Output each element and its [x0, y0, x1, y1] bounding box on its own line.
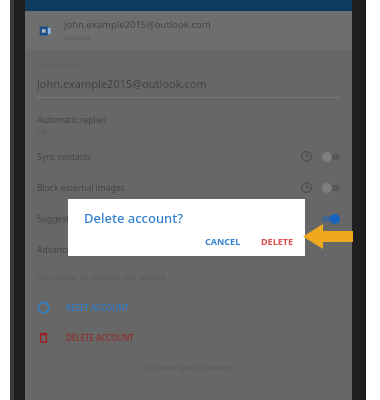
staticText: Automatic replies: [37, 114, 107, 126]
staticText: Suggested replies: [37, 213, 109, 225]
staticText: DELETE: [261, 235, 293, 247]
staticText: DELETE ACCOUNT: [66, 332, 134, 343]
button[interactable]: Sync contacts: [25, 141, 352, 172]
button[interactable]: Block external images: [25, 172, 352, 203]
staticText: Advanced settings: [37, 244, 111, 256]
staticText: Sync issues? Try resetting your account: [37, 273, 165, 283]
staticText: john.example2015@outlook.com: [64, 18, 211, 31]
button[interactable]: DELETE ACCOUNT: [25, 325, 352, 349]
staticText: Sync contacts: [37, 151, 92, 163]
button[interactable]: Toggle Suggested replies: [322, 213, 340, 225]
button[interactable]: CANCEL: [197, 231, 249, 251]
other: Pointer arrow highlighting Delete: [303, 224, 353, 249]
staticText: john.example2015@outlook.com: [37, 76, 207, 91]
staticText: Delete account?: [84, 209, 183, 227]
button[interactable]: RESET ACCOUNT: [25, 295, 352, 319]
staticText: Microsoft sync technology: [146, 363, 232, 373]
button[interactable]: Toggle Sync contacts: [322, 151, 340, 163]
other: Schedule: [301, 182, 312, 193]
button[interactable]: Automatic replies: [25, 110, 352, 141]
staticText: Outlook: [64, 33, 91, 43]
button[interactable]: john.example2015@outlook.com: [25, 11, 352, 49]
button[interactable]: Suggested replies: [25, 203, 352, 234]
button[interactable]: Advanced settings: [25, 234, 352, 265]
other: Schedule: [301, 151, 312, 162]
staticText: CANCEL: [205, 235, 241, 247]
button[interactable]: Toggle Block external images: [322, 182, 340, 194]
staticText: Off: [37, 128, 47, 137]
staticText: RESET ACCOUNT: [66, 302, 129, 313]
staticText: Block external images: [37, 182, 125, 194]
button[interactable]: DELETE: [253, 231, 301, 251]
